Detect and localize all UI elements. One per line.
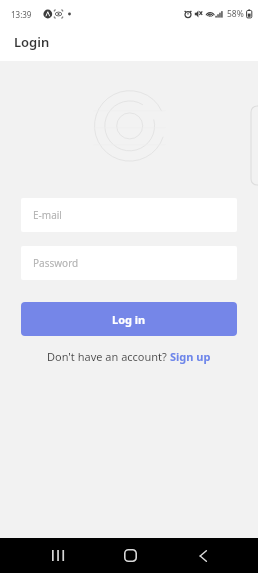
button[interactable]: Home: [112, 538, 148, 573]
staticText: Password: [33, 256, 79, 270]
staticText: E-mail: [33, 208, 62, 222]
button[interactable]: Password: [21, 246, 237, 280]
button[interactable]: Log in: [21, 302, 237, 336]
button[interactable]: E-mail: [21, 198, 237, 232]
staticText: Login: [14, 33, 50, 51]
staticText: Log in: [112, 312, 146, 327]
staticText: Sign up: [170, 349, 211, 364]
button[interactable]: Sign up: [170, 349, 211, 364]
button[interactable]: Recent apps: [40, 538, 76, 573]
button[interactable]: Back: [185, 538, 221, 573]
staticText: 13:39: [11, 9, 32, 20]
staticText: 58%: [227, 8, 244, 20]
staticText: Don't have an account?: [47, 349, 170, 364]
